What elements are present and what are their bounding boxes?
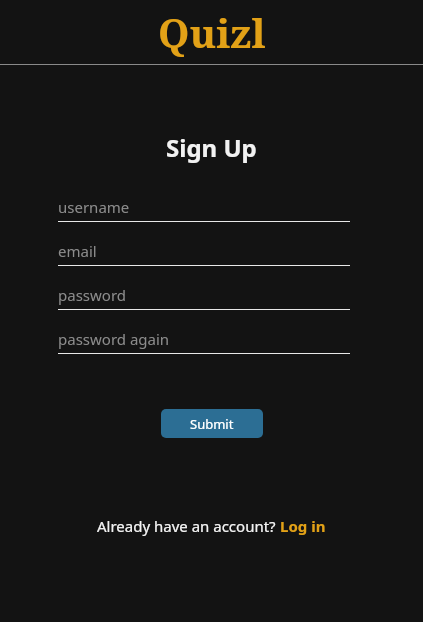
staticText: password again xyxy=(58,329,170,349)
staticText: Log in xyxy=(280,516,326,536)
staticText: Quizl xyxy=(158,5,266,59)
staticText: Already have an account? xyxy=(97,516,280,536)
button[interactable]: Submit xyxy=(161,409,263,438)
button[interactable]: password xyxy=(58,282,350,310)
button[interactable]: username xyxy=(58,194,350,222)
staticText: email xyxy=(58,241,97,261)
button[interactable]: email xyxy=(58,238,350,266)
button[interactable]: Log in xyxy=(280,516,326,536)
staticText: username xyxy=(58,197,130,217)
staticText: Sign Up xyxy=(166,131,257,164)
staticText: Submit xyxy=(190,415,234,433)
button[interactable]: Quizl xyxy=(152,5,272,59)
button[interactable]: password again xyxy=(58,326,350,354)
staticText: password xyxy=(58,285,126,305)
